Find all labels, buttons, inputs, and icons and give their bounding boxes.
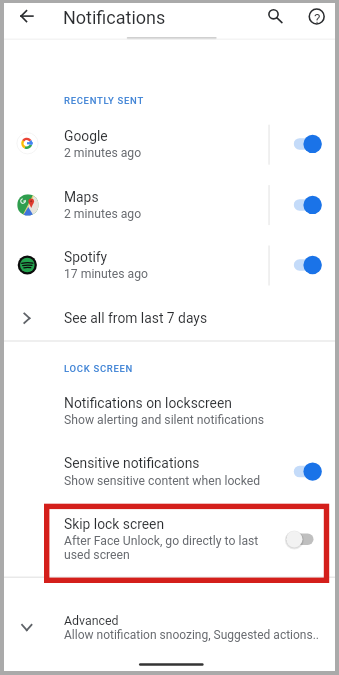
button[interactable]: Google: [4, 114, 335, 174]
staticText: LOCK SCREEN: [64, 363, 134, 374]
staticText: 2 minutes ago: [64, 207, 142, 221]
staticText: Show sensitive content when locked: [64, 474, 261, 488]
staticText: After Face Unlock, go directly to last: [64, 534, 259, 548]
staticText: 2 minutes ago: [64, 146, 142, 160]
button[interactable]: Help: [307, 6, 327, 26]
staticText: Maps: [64, 189, 99, 205]
staticText: Notifications on lockscreen: [64, 395, 232, 411]
staticText: Show alerting and silent notifications: [64, 413, 265, 427]
button[interactable]: Sensitive notifications: [4, 438, 335, 499]
button[interactable]: Notifications on lockscreen: [4, 377, 335, 438]
staticText: Notifications: [63, 7, 166, 28]
staticText: Advanced: [64, 613, 119, 628]
button[interactable]: Maps: [4, 174, 335, 235]
staticText: Spotify: [64, 249, 108, 265]
staticText: used screen: [64, 548, 130, 562]
staticText: 17 minutes ago: [64, 267, 149, 281]
button[interactable]: Advanced: [4, 577, 335, 671]
button[interactable]: Spotify: [4, 235, 335, 295]
button[interactable]: Skip lock screen: [4, 499, 335, 577]
staticText: ?: [314, 10, 321, 26]
button[interactable]: Search: [264, 4, 284, 24]
staticText: Google: [64, 128, 108, 144]
staticText: Sensitive notifications: [64, 455, 200, 471]
staticText: Allow notification snoozing, Suggested a…: [64, 628, 320, 642]
button[interactable]: See all from last 7 days: [4, 295, 335, 341]
button[interactable]: Navigate up: [17, 6, 37, 26]
staticText: Skip lock screen: [64, 516, 165, 532]
staticText: RECENTLY SENT: [64, 95, 144, 106]
staticText: See all from last 7 days: [64, 310, 208, 326]
